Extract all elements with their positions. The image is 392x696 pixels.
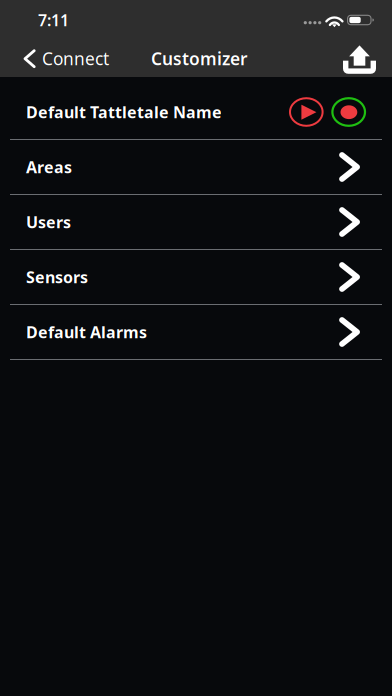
button[interactable]: Play bbox=[288, 96, 325, 128]
button[interactable]: Connect bbox=[0, 40, 119, 77]
button[interactable]: Areas bbox=[0, 140, 392, 194]
staticText: Users bbox=[26, 211, 71, 233]
button[interactable]: Default Alarms bbox=[0, 305, 392, 359]
staticText: Default Tattletale Name bbox=[26, 101, 222, 123]
button[interactable]: Share bbox=[329, 40, 392, 77]
button[interactable]: Users bbox=[0, 195, 392, 249]
button[interactable]: Record bbox=[330, 96, 367, 128]
button[interactable]: Sensors bbox=[0, 250, 392, 304]
staticText: Default Alarms bbox=[26, 321, 147, 343]
staticText: 7:11 bbox=[38, 9, 69, 31]
staticText: Areas bbox=[26, 156, 72, 178]
staticText: Connect bbox=[42, 47, 109, 70]
staticText: Sensors bbox=[26, 266, 88, 288]
staticText: Customizer bbox=[151, 47, 248, 70]
